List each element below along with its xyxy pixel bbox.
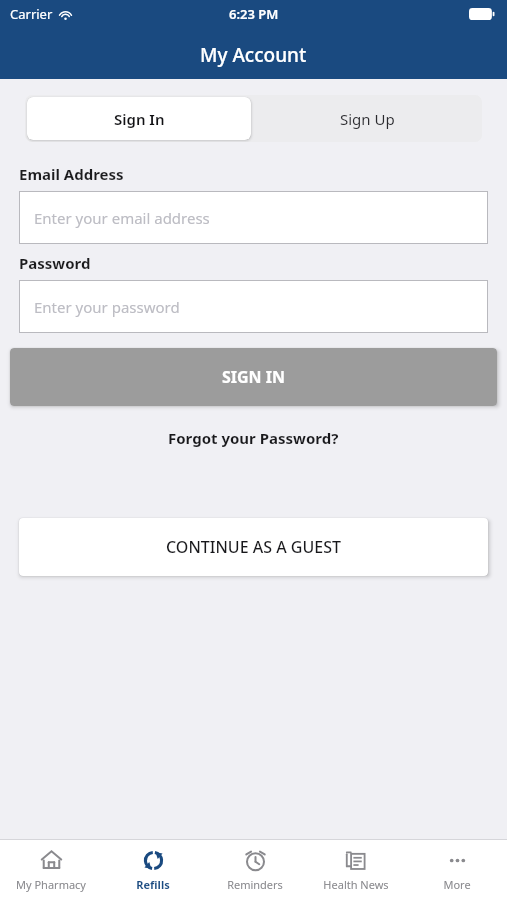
staticText: CONTINUE AS A GUEST (166, 536, 341, 558)
button[interactable]: Sign In (27, 97, 251, 140)
staticText: Health News (323, 877, 389, 892)
button[interactable]: Enter your password (19, 280, 488, 333)
staticText: SIGN IN (222, 366, 286, 388)
staticText: Enter your email address (34, 208, 210, 228)
staticText: My Account (200, 42, 307, 68)
staticText: More (443, 877, 471, 892)
staticText: Enter your password (34, 297, 180, 317)
button[interactable]: My Pharmacy (0, 839, 102, 900)
staticText: Email Address (19, 164, 124, 184)
staticText: Sign In (114, 109, 165, 129)
button[interactable]: Health News (305, 839, 406, 900)
button[interactable]: Reminders (204, 839, 305, 900)
staticText: Reminders (227, 877, 283, 892)
staticText: Refills (136, 877, 170, 892)
staticText: Forgot your Password? (168, 428, 339, 448)
button[interactable]: CONTINUE AS A GUEST (19, 518, 488, 576)
staticText: Carrier (10, 5, 53, 23)
button[interactable]: Refills (102, 839, 204, 900)
button[interactable]: Sign Up (253, 95, 482, 142)
button[interactable]: Forgot your Password? (154, 423, 353, 453)
staticText: My Pharmacy (16, 877, 86, 892)
staticText: 6:23 PM (229, 5, 279, 23)
button[interactable]: Enter your email address (19, 191, 488, 244)
staticText: Password (19, 253, 91, 273)
button[interactable]: SIGN IN (10, 348, 497, 406)
button[interactable]: More (406, 839, 507, 900)
staticText: Sign Up (340, 109, 395, 129)
